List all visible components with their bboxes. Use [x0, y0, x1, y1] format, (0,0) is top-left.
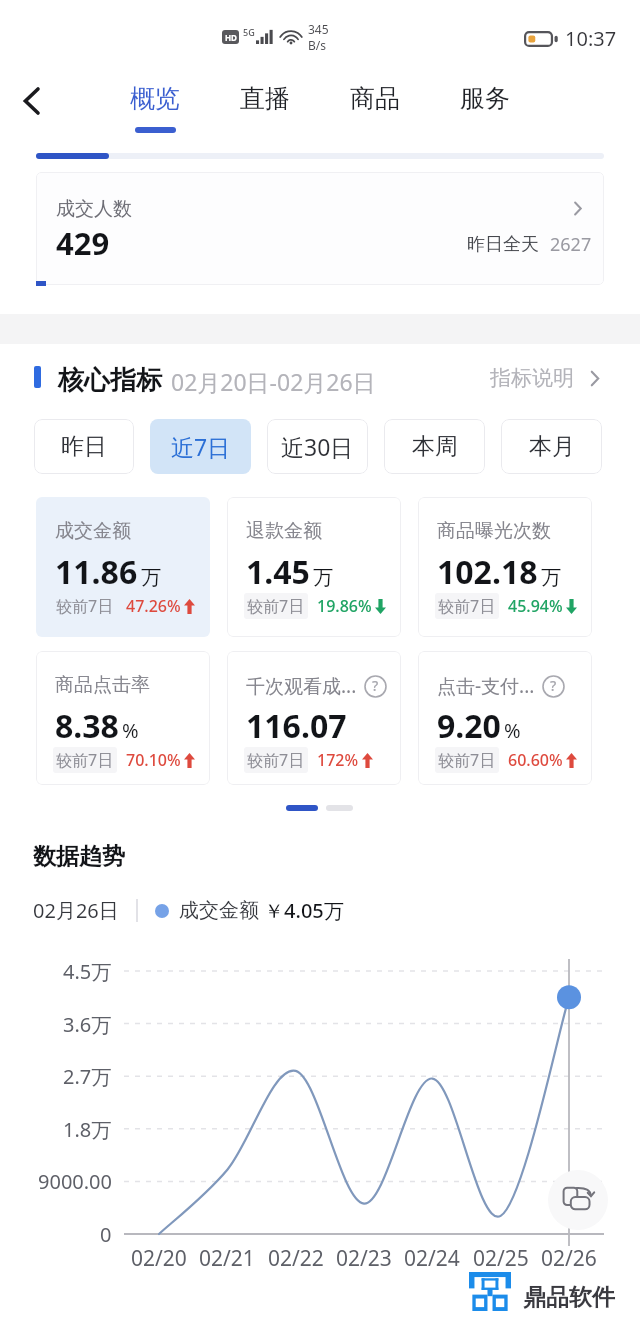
staticText: 昨日 [61, 432, 107, 461]
staticText: 2627 [550, 232, 592, 257]
staticText: 02/23 [336, 1244, 392, 1273]
staticText: 1.45 [246, 550, 310, 594]
button[interactable]: 昨日 [34, 419, 134, 474]
staticText: 较前7日 [56, 595, 114, 617]
staticText: B/s [308, 37, 327, 53]
button[interactable]: 退款金额 [227, 497, 401, 637]
staticText: 02/22 [268, 1244, 324, 1273]
staticText: 8.38 [55, 704, 119, 748]
button[interactable]: 近7日 [150, 419, 251, 474]
staticText: 较前7日 [56, 749, 114, 771]
button[interactable]: Back [7, 76, 57, 126]
staticText: 数据趋势 [33, 842, 125, 871]
staticText: 3.6万 [63, 1011, 112, 1038]
staticText: 较前7日 [438, 595, 496, 617]
staticText: ? [550, 676, 557, 695]
button[interactable]: 点击-支付... [418, 651, 592, 785]
staticText: 本周 [412, 432, 458, 461]
staticText: 02月26日 [33, 897, 119, 924]
staticText: ? [372, 676, 379, 695]
button[interactable]: 商品点击率 [36, 651, 210, 785]
staticText: 核心指标 [58, 364, 162, 397]
button[interactable]: 成交金额 [36, 497, 210, 637]
staticText: 0 [100, 1221, 112, 1248]
staticText: 02/25 [473, 1244, 529, 1273]
staticText: 直播 [237, 83, 293, 114]
staticText: % [122, 717, 139, 744]
button[interactable]: 成交人数 [36, 172, 604, 285]
button[interactable]: 本周 [384, 419, 485, 474]
staticText: 指标说明 [490, 365, 574, 391]
staticText: 商品点击率 [55, 673, 150, 697]
staticText: 成交金额 [55, 519, 131, 543]
staticText: 02/26 [541, 1244, 597, 1273]
staticText: 4.5万 [63, 958, 112, 985]
button[interactable]: 概览 [127, 83, 183, 133]
button[interactable]: 指标说明 [490, 365, 603, 391]
staticText: 本月 [529, 432, 575, 461]
staticText: 近7日 [171, 431, 231, 462]
staticText: 60.60% [508, 749, 563, 771]
staticText: 9000.00 [38, 1168, 112, 1195]
staticText: 成交人数 [56, 197, 132, 221]
staticText: HD [225, 32, 237, 43]
staticText: 47.26% [126, 595, 181, 617]
staticText: 11.86 [55, 550, 138, 594]
staticText: 02/24 [404, 1244, 460, 1273]
staticText: 429 [56, 222, 110, 264]
button[interactable]: 服务 [457, 83, 513, 127]
staticText: 1.8万 [63, 1116, 112, 1143]
staticText: 万 [141, 565, 161, 590]
button[interactable]: 本月 [501, 419, 602, 474]
staticText: 19.86% [317, 595, 372, 617]
staticText: 345 [308, 21, 329, 37]
staticText: 近30日 [281, 431, 354, 462]
staticText: 概览 [127, 83, 183, 114]
staticText: 商品 [347, 83, 403, 114]
staticText: 2.7万 [63, 1063, 112, 1090]
staticText: 万 [541, 565, 561, 590]
button[interactable]: 商品曝光次数 [418, 497, 592, 637]
button[interactable]: 直播 [237, 83, 293, 127]
staticText: 千次观看成... [246, 673, 357, 699]
staticText: 较前7日 [438, 749, 496, 771]
staticText: 退款金额 [246, 519, 322, 543]
button[interactable]: 商品 [347, 83, 403, 127]
button[interactable]: 千次观看成... [227, 651, 401, 785]
staticText: 点击-支付... [437, 673, 535, 699]
staticText: 02/20 [131, 1244, 187, 1273]
staticText: 商品曝光次数 [437, 519, 551, 543]
staticText: 成交金额 [179, 898, 259, 923]
staticText: 鼎品软件 [523, 1283, 615, 1312]
button[interactable]: 近30日 [267, 419, 368, 474]
staticText: 较前7日 [247, 749, 305, 771]
staticText: 172% [317, 749, 359, 771]
staticText: 9.20 [437, 704, 501, 748]
staticText: % [504, 717, 521, 744]
staticText: 45.94% [508, 595, 563, 617]
staticText: 服务 [457, 83, 513, 114]
staticText: 70.10% [126, 749, 181, 771]
staticText: 5G [243, 26, 255, 38]
staticText: 116.07 [246, 704, 347, 748]
staticText: 102.18 [437, 550, 538, 594]
button[interactable]: Rotate chart [548, 1170, 608, 1230]
staticText: 10:37 [565, 25, 617, 52]
staticText: ￥4.05万 [264, 897, 344, 924]
staticText: 昨日全天 [467, 233, 539, 256]
staticText: 万 [313, 565, 333, 590]
staticText: 较前7日 [247, 595, 305, 617]
staticText: 02/21 [199, 1244, 255, 1273]
staticText: 02月20日-02月26日 [171, 366, 376, 397]
